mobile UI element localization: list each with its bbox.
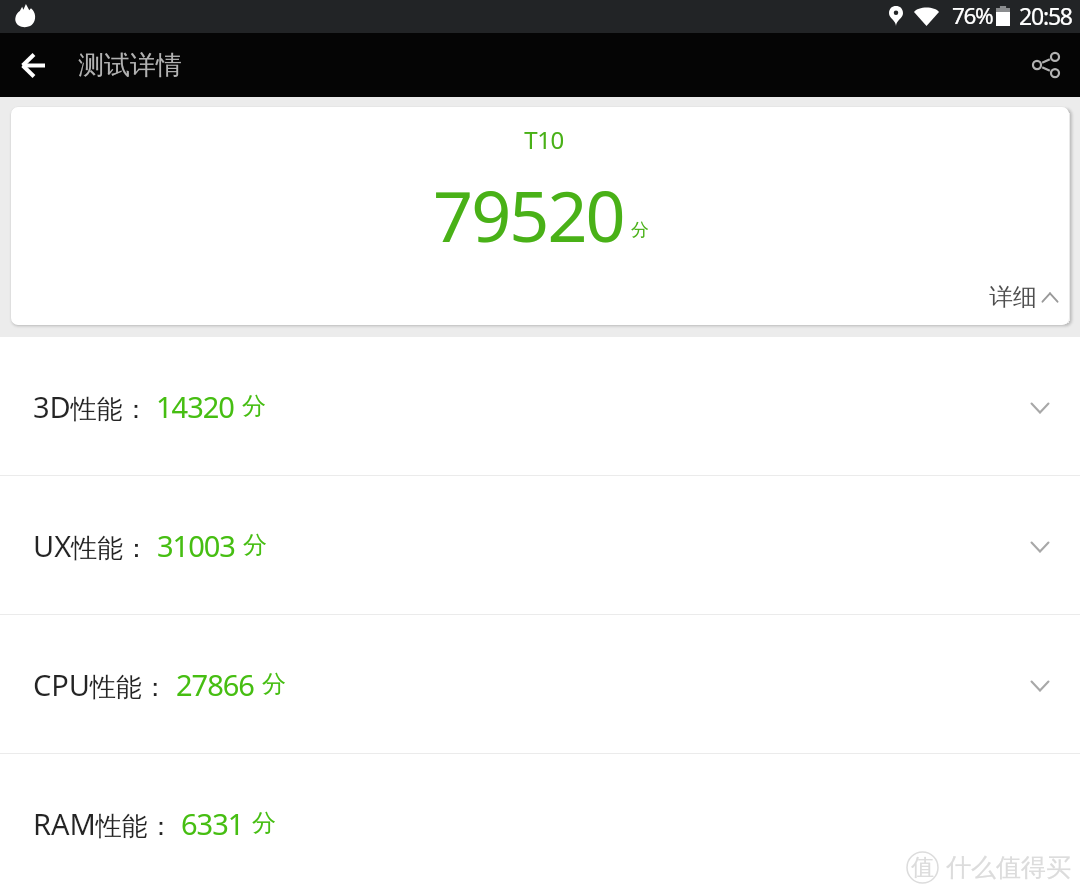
staticText: 什么值得买 — [946, 852, 1071, 883]
staticText: 79520 — [433, 167, 624, 262]
button[interactable]: UX性能： — [0, 476, 1080, 614]
staticText: 测试详情 — [78, 49, 182, 82]
staticText: 14320 — [156, 387, 234, 426]
button[interactable]: Share — [1012, 33, 1080, 97]
staticText: 分 — [262, 669, 286, 699]
button[interactable]: T10 — [11, 107, 1069, 325]
button[interactable]: Back — [0, 33, 67, 97]
staticText: T10 — [15, 123, 1069, 156]
staticText: 值 — [911, 853, 934, 882]
staticText: 3D性能： — [33, 387, 149, 426]
staticText: RAM性能： — [33, 804, 174, 843]
staticText: 20:58 — [1019, 0, 1072, 31]
staticText: 27866 — [176, 665, 254, 704]
button[interactable]: 详细 — [989, 282, 1058, 312]
staticText: UX性能： — [33, 526, 150, 565]
staticText: 详细 — [989, 282, 1037, 312]
staticText: 76% — [952, 0, 993, 31]
staticText: 分 — [242, 391, 266, 421]
button[interactable]: 3D性能： — [0, 337, 1080, 475]
staticText: 分 — [252, 808, 276, 838]
button[interactable]: CPU性能： — [0, 615, 1080, 753]
staticText: 31003 — [157, 526, 235, 565]
staticText: 6331 — [181, 804, 244, 843]
button[interactable]: RAM性能： — [0, 754, 1080, 892]
staticText: 分 — [243, 530, 267, 560]
staticText: 分 — [631, 219, 649, 242]
staticText: CPU性能： — [33, 665, 169, 704]
